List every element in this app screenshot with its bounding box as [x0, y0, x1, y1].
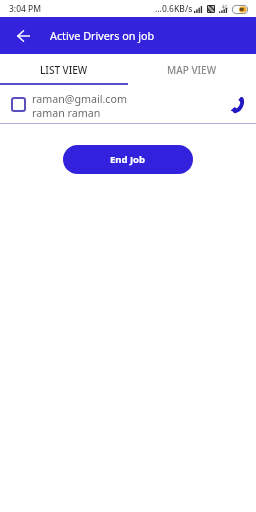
button[interactable]: LIST VIEW — [0, 54, 128, 84]
staticText: End Job — [110, 153, 146, 166]
button[interactable]: MAP VIEW — [128, 54, 256, 84]
staticText: raman@gmail.com raman raman — [32, 92, 127, 120]
staticText: 4G — [222, 4, 228, 10]
button[interactable]: Back — [11, 24, 35, 48]
button[interactable]: Select driver — [10, 96, 26, 112]
button[interactable]: Select driver — [0, 84, 256, 123]
staticText: LIST VIEW — [40, 63, 88, 77]
staticText: MAP VIEW — [167, 63, 217, 77]
button[interactable]: End Job — [63, 145, 193, 174]
staticText: Active Drivers on job — [50, 28, 155, 43]
staticText: ...0.6KB/s — [155, 3, 193, 15]
staticText: 3:04 PM — [9, 3, 42, 15]
button[interactable]: Call — [223, 91, 249, 117]
